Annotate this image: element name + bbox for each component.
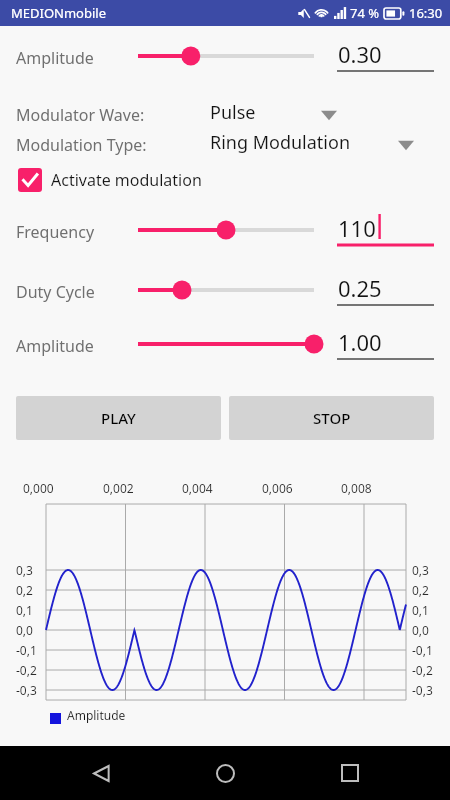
button[interactable]: PLAY <box>16 396 221 440</box>
staticText: MEDIONmobile <box>11 4 107 22</box>
staticText: 0,3 <box>16 562 33 578</box>
button[interactable]: 110 <box>337 210 434 252</box>
staticText: Amplitude <box>67 707 126 723</box>
staticText: Pulse <box>210 100 256 125</box>
staticText: 0,1 <box>412 602 429 618</box>
staticText: 0,0 <box>412 622 429 638</box>
staticText: 0.25 <box>338 273 382 303</box>
staticText: 0,3 <box>412 562 429 578</box>
staticText: 0,004 <box>182 480 213 496</box>
staticText: -0,2 <box>412 662 433 678</box>
staticText: -0,3 <box>412 682 433 698</box>
staticText: 0,1 <box>16 602 33 618</box>
button[interactable]: Amplitude slider <box>128 326 326 362</box>
staticText: 74 % <box>350 4 380 22</box>
button[interactable]: 0.25 <box>337 270 434 312</box>
staticText: Amplitude <box>16 335 94 357</box>
staticText: 0,2 <box>16 582 33 598</box>
button[interactable]: STOP <box>229 396 434 440</box>
button[interactable]: 0.30 <box>337 36 434 78</box>
staticText: 0,008 <box>341 480 372 496</box>
staticText: STOP <box>313 408 351 428</box>
staticText: 0,006 <box>262 480 293 496</box>
button[interactable]: Duty Cycle slider <box>128 272 326 308</box>
button[interactable]: Home <box>201 749 249 797</box>
staticText: Activate modulation <box>51 169 202 191</box>
staticText: Modulator Wave: <box>16 104 145 126</box>
button[interactable]: 1.00 <box>337 324 434 366</box>
staticText: -0,3 <box>16 682 37 698</box>
staticText: 0,000 <box>23 480 54 496</box>
button[interactable]: Frequency slider <box>128 212 326 248</box>
button[interactable]: Activate modulation <box>16 166 204 194</box>
staticText: Duty Cycle <box>16 281 95 303</box>
staticText: -0,1 <box>16 642 37 658</box>
staticText: Frequency <box>16 221 95 243</box>
staticText: Amplitude <box>16 47 94 69</box>
staticText: 16:30 <box>409 4 443 22</box>
button[interactable]: Amplitude slider <box>128 38 326 74</box>
staticText: Ring Modulation <box>210 130 351 155</box>
staticText: PLAY <box>101 408 136 428</box>
staticText: 0.30 <box>338 39 382 69</box>
staticText: Modulation Type: <box>16 134 147 156</box>
staticText: -0,2 <box>16 662 37 678</box>
staticText: 110 <box>338 213 376 243</box>
staticText: 0,002 <box>103 480 134 496</box>
button[interactable]: Pulse <box>206 100 436 127</box>
button[interactable]: Back <box>77 749 125 797</box>
button[interactable]: Ring Modulation <box>206 130 436 157</box>
staticText: 1.00 <box>338 327 382 357</box>
staticText: 0,0 <box>16 622 33 638</box>
staticText: -0,1 <box>412 642 433 658</box>
staticText: 0,2 <box>412 582 429 598</box>
button[interactable]: Recents <box>326 749 374 797</box>
